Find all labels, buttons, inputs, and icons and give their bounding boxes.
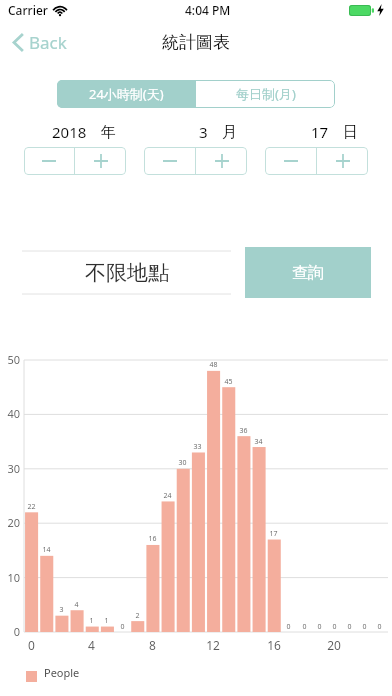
staticText: 0	[317, 622, 322, 632]
staticText: 4	[74, 600, 79, 610]
button[interactable]: Increase 月	[196, 147, 247, 175]
staticText: 1	[89, 616, 94, 626]
staticText: 24	[163, 491, 172, 501]
staticText: 17	[269, 529, 278, 539]
button[interactable]: Decrease 日	[265, 147, 316, 175]
staticText: 8	[149, 637, 156, 653]
staticText: 24小時制(天)	[89, 85, 164, 103]
staticText: 0	[347, 622, 352, 632]
staticText: 統計圖表	[162, 32, 230, 53]
button[interactable]: 不限地點	[22, 247, 231, 298]
staticText: 14	[42, 545, 51, 555]
staticText: 17	[311, 122, 329, 142]
staticText: 年	[101, 123, 116, 142]
staticText: 0	[332, 622, 337, 632]
staticText: 0	[120, 622, 125, 632]
staticText: 48	[209, 360, 218, 370]
button[interactable]: 查詢	[245, 247, 371, 298]
button[interactable]: Back	[8, 25, 72, 60]
staticText: 50	[7, 352, 20, 367]
staticText: 45	[224, 377, 233, 387]
staticText: 0	[302, 622, 307, 632]
staticText: 34	[254, 437, 263, 447]
button[interactable]: 24小時制(天)	[57, 80, 196, 108]
staticText: 0	[286, 622, 291, 632]
staticText: 0	[13, 624, 20, 639]
staticText: 2018	[52, 122, 87, 142]
staticText: 20	[7, 515, 20, 530]
staticText: Carrier	[8, 2, 48, 18]
staticText: 月	[222, 123, 237, 142]
button[interactable]: Increase 年	[75, 147, 126, 175]
staticText: 3	[59, 605, 64, 615]
staticText: Back	[29, 31, 67, 54]
staticText: 日	[343, 123, 358, 142]
staticText: 查詢	[292, 263, 324, 283]
staticText: 4	[88, 637, 95, 653]
staticText: 0	[362, 622, 367, 632]
staticText: 22	[27, 502, 36, 512]
staticText: 16	[267, 637, 281, 653]
staticText: 1	[104, 616, 109, 626]
staticText: 不限地點	[85, 260, 169, 286]
staticText: 10	[7, 570, 20, 585]
staticText: 0	[377, 622, 382, 632]
staticText: 33	[193, 442, 202, 452]
staticText: 20	[327, 637, 341, 653]
staticText: 40	[7, 406, 20, 421]
staticText: 每日制(月)	[236, 85, 296, 103]
button[interactable]: Increase 日	[317, 147, 368, 175]
staticText: 2	[135, 611, 140, 621]
staticText: 3	[199, 122, 208, 142]
staticText: 12	[206, 637, 220, 653]
staticText: 36	[239, 426, 248, 436]
button[interactable]: 每日制(月)	[196, 80, 335, 108]
staticText: People	[44, 665, 80, 680]
staticText: 4:04 PM	[185, 2, 231, 18]
staticText: 16	[148, 534, 157, 544]
staticText: 30	[178, 458, 187, 468]
button[interactable]: Decrease 月	[144, 147, 195, 175]
staticText: 30	[7, 461, 20, 476]
staticText: 0	[28, 637, 35, 653]
button[interactable]: Decrease 年	[24, 147, 74, 175]
